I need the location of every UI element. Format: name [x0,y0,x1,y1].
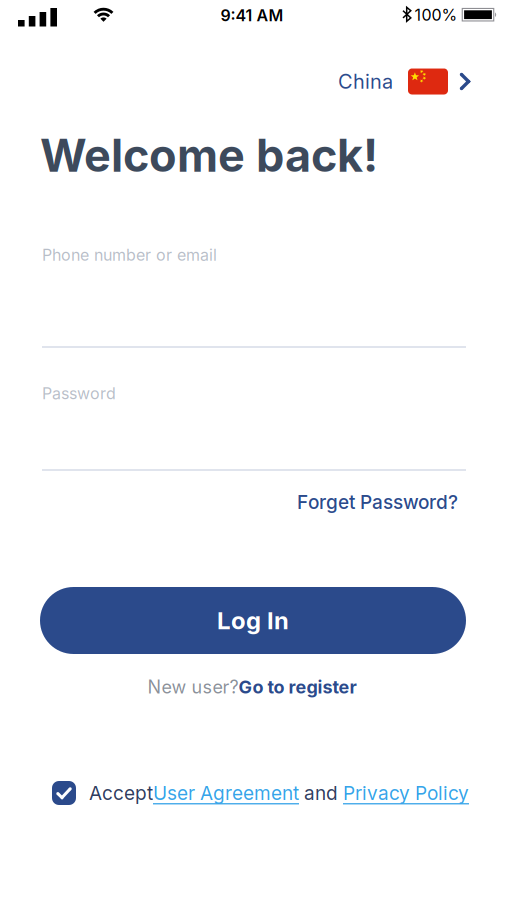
staticText: and [299,781,343,804]
button[interactable]: Log In [40,587,466,654]
staticText: Privacy Policy [343,781,469,804]
staticText: Password [42,384,116,403]
staticText: China [338,69,393,94]
staticText: 9:41 AM [220,6,283,25]
staticText: 100% [414,5,457,25]
staticText: Welcome back! [40,128,378,183]
staticText: User Agreement [153,781,299,804]
staticText: Phone number or email [42,245,217,265]
staticText: New user? [147,676,238,698]
staticText: Forget Password? [297,490,458,513]
button[interactable]: Forget Password? [297,490,458,513]
staticText: Log In [217,606,289,635]
button[interactable]: New user? [147,676,356,698]
button[interactable]: China [338,68,471,94]
button[interactable]: Accept [52,781,469,805]
staticText: Accept [89,781,153,804]
staticText: Go to register [238,676,356,698]
